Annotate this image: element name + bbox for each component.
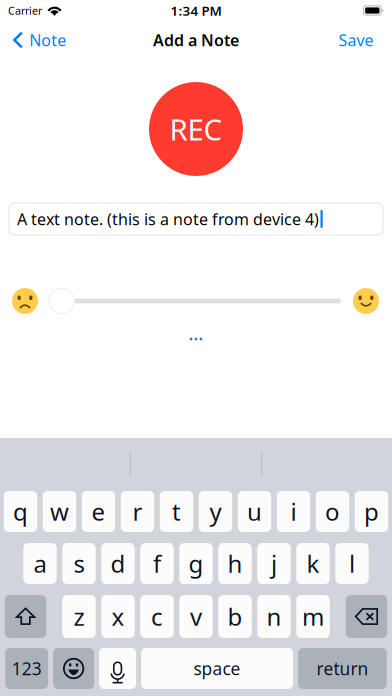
- staticText: 123: [12, 657, 42, 680]
- staticText: l: [349, 548, 355, 579]
- staticText: e: [91, 496, 105, 527]
- staticText: w: [50, 496, 69, 527]
- staticText: n: [266, 601, 281, 632]
- staticText: a: [33, 548, 46, 579]
- staticText: h: [227, 548, 242, 579]
- staticText: u: [247, 496, 262, 527]
- button[interactable]: Save: [324, 23, 392, 57]
- staticText: q: [13, 496, 28, 527]
- button[interactable]: i: [277, 491, 310, 532]
- button[interactable]: s: [62, 543, 96, 584]
- button[interactable]: k: [296, 543, 330, 584]
- button[interactable]: Shift: [5, 595, 46, 638]
- staticText: y: [209, 496, 221, 527]
- staticText: REC: [169, 109, 222, 148]
- button[interactable]: w: [43, 491, 76, 532]
- button[interactable]: h: [218, 543, 252, 584]
- staticText: s: [73, 548, 84, 579]
- staticText: p: [364, 496, 379, 527]
- button[interactable]: p: [355, 491, 388, 532]
- button[interactable]: j: [257, 543, 291, 584]
- staticText: z: [73, 601, 84, 632]
- button[interactable]: REC: [149, 82, 243, 176]
- button[interactable]: d: [101, 543, 135, 584]
- staticText: f: [153, 548, 161, 579]
- button[interactable]: Note: [0, 23, 76, 57]
- button[interactable]: 123: [5, 648, 48, 689]
- staticText: c: [151, 601, 163, 632]
- staticText: j: [271, 548, 277, 579]
- button[interactable]: q: [4, 491, 37, 532]
- button[interactable]: t: [160, 491, 193, 532]
- staticText: x: [111, 601, 124, 632]
- staticText: t: [172, 496, 181, 527]
- staticText: space: [194, 657, 241, 680]
- staticText: return: [316, 657, 368, 680]
- button[interactable]: b: [218, 595, 252, 638]
- button[interactable]: l: [335, 543, 369, 584]
- button[interactable]: z: [62, 595, 96, 638]
- staticText: g: [188, 548, 203, 579]
- button[interactable]: v: [179, 595, 213, 638]
- staticText: v: [190, 601, 202, 632]
- button[interactable]: u: [238, 491, 271, 532]
- button[interactable]: n: [257, 595, 291, 638]
- staticText: Add a Note: [153, 29, 239, 51]
- button[interactable]: c: [140, 595, 174, 638]
- button[interactable]: Dictate: [99, 648, 136, 689]
- button[interactable]: r: [121, 491, 154, 532]
- staticText: m: [302, 601, 324, 632]
- button[interactable]: Delete: [346, 595, 387, 638]
- staticText: b: [227, 601, 242, 632]
- staticText: i: [290, 496, 296, 527]
- staticText: Note: [29, 29, 66, 51]
- staticText: 1:34 PM: [170, 2, 221, 19]
- button[interactable]: m: [296, 595, 330, 638]
- button[interactable]: f: [140, 543, 174, 584]
- button[interactable]: Emoji keyboard: [53, 648, 94, 689]
- button[interactable]: x: [101, 595, 135, 638]
- staticText: Carrier: [8, 3, 42, 18]
- button[interactable]: e: [82, 491, 115, 532]
- button[interactable]: return: [298, 648, 387, 689]
- staticText: Save: [338, 29, 373, 51]
- button[interactable]: o: [316, 491, 349, 532]
- button[interactable]: g: [179, 543, 213, 584]
- button[interactable]: a: [23, 543, 57, 584]
- staticText: d: [110, 548, 125, 579]
- button[interactable]: y: [199, 491, 232, 532]
- staticText: o: [325, 496, 340, 527]
- button[interactable]: space: [141, 648, 293, 689]
- staticText: r: [132, 496, 142, 527]
- staticText: A text note. (this is a note from device…: [17, 208, 319, 230]
- staticText: k: [306, 548, 319, 579]
- button[interactable]: More: [176, 331, 216, 347]
